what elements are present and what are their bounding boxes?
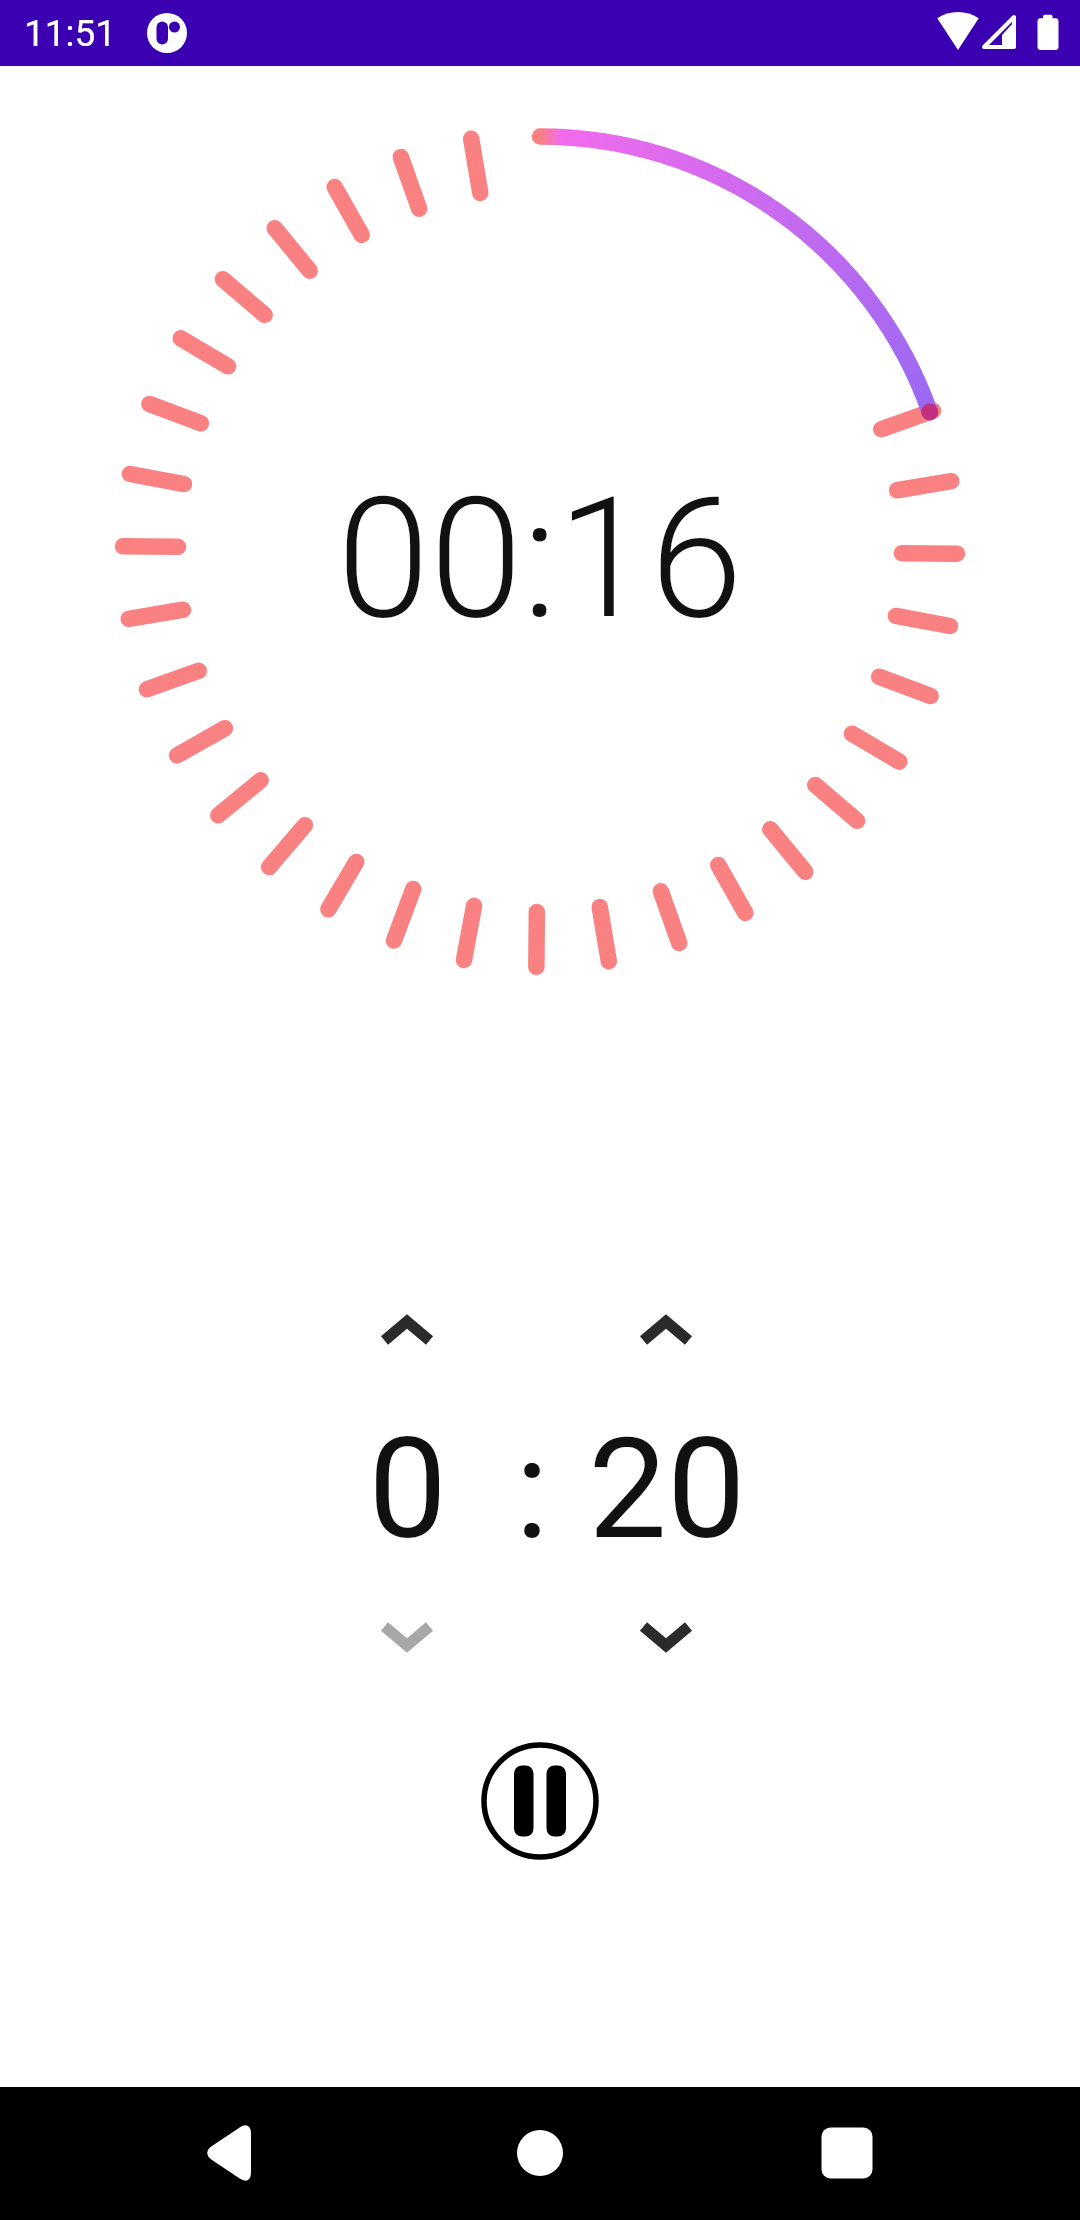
button[interactable]: [475, 1736, 605, 1866]
staticText: 11:51: [24, 12, 117, 55]
button[interactable]: [357, 1295, 457, 1367]
staticText: 00:16: [337, 461, 743, 657]
staticText: 0: [368, 1407, 447, 1571]
button[interactable]: 20: [577, 1399, 757, 1579]
button[interactable]: [797, 2103, 897, 2203]
button[interactable]: [357, 1600, 457, 1672]
button[interactable]: 0: [317, 1399, 497, 1579]
button[interactable]: [616, 1295, 716, 1367]
button[interactable]: [616, 1600, 716, 1672]
button[interactable]: [490, 2103, 590, 2203]
staticText: 20: [588, 1407, 746, 1571]
button[interactable]: [178, 2103, 278, 2203]
staticText: :: [515, 1407, 549, 1571]
